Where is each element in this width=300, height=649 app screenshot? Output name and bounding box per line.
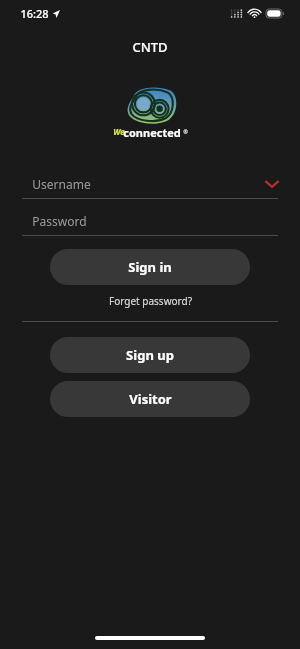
button[interactable]: Sign in [50,249,250,285]
button[interactable]: Password [22,207,278,236]
staticText: Username [32,176,91,192]
button[interactable]: Forget password? [0,291,300,311]
staticText: Sign in [128,258,172,276]
staticText: Forget password? [109,294,192,308]
staticText: Sign up [126,346,174,364]
button[interactable]: Username [22,170,278,199]
button[interactable]: Sign up [50,337,250,373]
button[interactable]: Visitor [50,381,250,417]
staticText: Visitor [129,390,172,408]
staticText: We [113,126,125,137]
staticText: Password [32,213,87,229]
staticText: connected [123,125,181,140]
staticText: CNTD [132,38,168,56]
staticText: 16:28 [20,6,49,21]
other: Show saved usernames [266,180,278,188]
staticText: ® [183,129,188,136]
